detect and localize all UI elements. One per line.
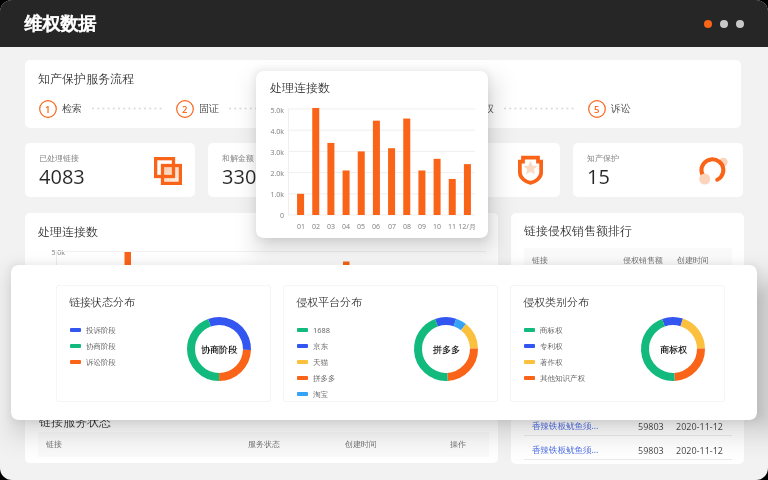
staticText: 著作权 xyxy=(540,358,563,367)
staticText: 01 xyxy=(290,222,312,232)
staticText: 商标权 xyxy=(540,326,563,335)
staticText: 5.0k xyxy=(264,106,284,116)
staticText: 08 xyxy=(396,222,418,232)
staticText: 5.0k xyxy=(38,248,65,258)
staticText: 4.0k xyxy=(264,127,284,137)
staticText: 知产保护 xyxy=(587,153,619,163)
staticText: 商标权 xyxy=(660,344,687,355)
staticText: 1688 xyxy=(313,325,331,335)
staticText: 15 xyxy=(587,163,610,190)
staticText: 维权数据 xyxy=(24,13,96,36)
staticText: 和解金额 xyxy=(222,153,254,163)
staticText: 链接侵权销售额排行 xyxy=(524,223,632,238)
staticText: 拼多多 xyxy=(313,374,336,383)
staticText: 已处理链接 xyxy=(39,153,79,163)
staticText: 链接状态分布 xyxy=(69,295,135,309)
staticText: 59803 xyxy=(638,444,664,456)
staticText: 其他知识产权 xyxy=(540,374,585,383)
staticText: 处理连接数 xyxy=(38,224,98,239)
staticText: 02 xyxy=(305,222,327,232)
staticText: 872 xyxy=(404,163,439,190)
staticText: 拼多多 xyxy=(433,344,460,355)
staticText: 检索 xyxy=(62,102,82,115)
staticText: 处理连接数 xyxy=(270,80,330,95)
staticText: 3.0k xyxy=(264,148,284,158)
staticText: 03 xyxy=(320,222,342,232)
staticText: 诉讼阶段 xyxy=(86,358,116,367)
staticText: 知产保护服务流程 xyxy=(38,71,134,86)
staticText: 06 xyxy=(365,222,387,232)
staticText: 1 xyxy=(45,103,51,116)
staticText: 协商阶段 xyxy=(201,344,237,355)
button[interactable]: 和解金额 xyxy=(208,143,378,197)
staticText: 诉讼 xyxy=(611,102,631,115)
staticText: 专利权 xyxy=(540,342,563,351)
staticText: 侵权下架 xyxy=(404,153,436,163)
staticText: 侵权销售额 xyxy=(623,255,663,265)
staticText: 2020-11-12 xyxy=(676,444,723,456)
button[interactable]: 已处理链接 xyxy=(25,143,195,197)
staticText: 天猫 xyxy=(313,358,328,367)
button[interactable]: Minimize xyxy=(720,20,728,28)
staticText: 固证 xyxy=(199,102,219,115)
staticText: 1.0k xyxy=(264,190,284,200)
staticText: 操作 xyxy=(450,439,466,449)
staticText: 10 xyxy=(426,222,448,232)
staticText: 04 xyxy=(335,222,357,232)
staticText: 侵权类别分布 xyxy=(523,295,589,309)
staticText: 4083 xyxy=(39,163,85,190)
button[interactable]: Maximize xyxy=(736,20,744,28)
staticText: 0 xyxy=(264,211,284,221)
button[interactable]: 侵权下架 xyxy=(390,143,560,197)
staticText: 链接 xyxy=(532,255,548,265)
staticText: 2020-11-12 xyxy=(676,420,723,432)
staticText: 香辣铁板鱿鱼须... xyxy=(532,420,599,432)
button[interactable]: 链接状态分布 xyxy=(56,285,271,402)
staticText: 投诉阶段 xyxy=(86,326,116,335)
staticText: 链接服务状态 xyxy=(39,414,111,429)
staticText: 侵权平台分布 xyxy=(296,295,362,309)
staticText: 59803 xyxy=(638,420,664,432)
button[interactable]: 香辣铁板鱿鱼须... xyxy=(524,436,732,459)
staticText: 5 xyxy=(594,103,600,116)
staticText: 2.0k xyxy=(264,169,284,179)
staticText: 淘宝 xyxy=(313,390,328,399)
staticText: 05 xyxy=(350,222,372,232)
staticText: 京东 xyxy=(313,342,328,351)
staticText: 服务状态 xyxy=(248,439,280,449)
button[interactable]: 侵权类别分布 xyxy=(510,285,725,402)
staticText: 维权 xyxy=(474,102,494,115)
button[interactable]: 香辣铁板鱿鱼须... xyxy=(524,412,732,435)
staticText: 12/月 xyxy=(456,222,478,232)
staticText: 创建时间 xyxy=(677,255,709,265)
button[interactable]: Close xyxy=(704,20,712,28)
staticText: 09 xyxy=(411,222,433,232)
staticText: 协商阶段 xyxy=(86,342,116,351)
staticText: 香辣铁板鱿鱼须... xyxy=(532,444,599,456)
staticText: 2 xyxy=(182,103,188,116)
staticText: 11 xyxy=(441,222,463,232)
staticText: 链接 xyxy=(46,439,62,449)
staticText: 创建时间 xyxy=(345,439,377,449)
button[interactable]: 侵权平台分布 xyxy=(283,285,498,402)
button[interactable]: 知产保护 xyxy=(573,143,743,197)
staticText: 33000 xyxy=(222,163,280,190)
staticText: 07 xyxy=(381,222,403,232)
